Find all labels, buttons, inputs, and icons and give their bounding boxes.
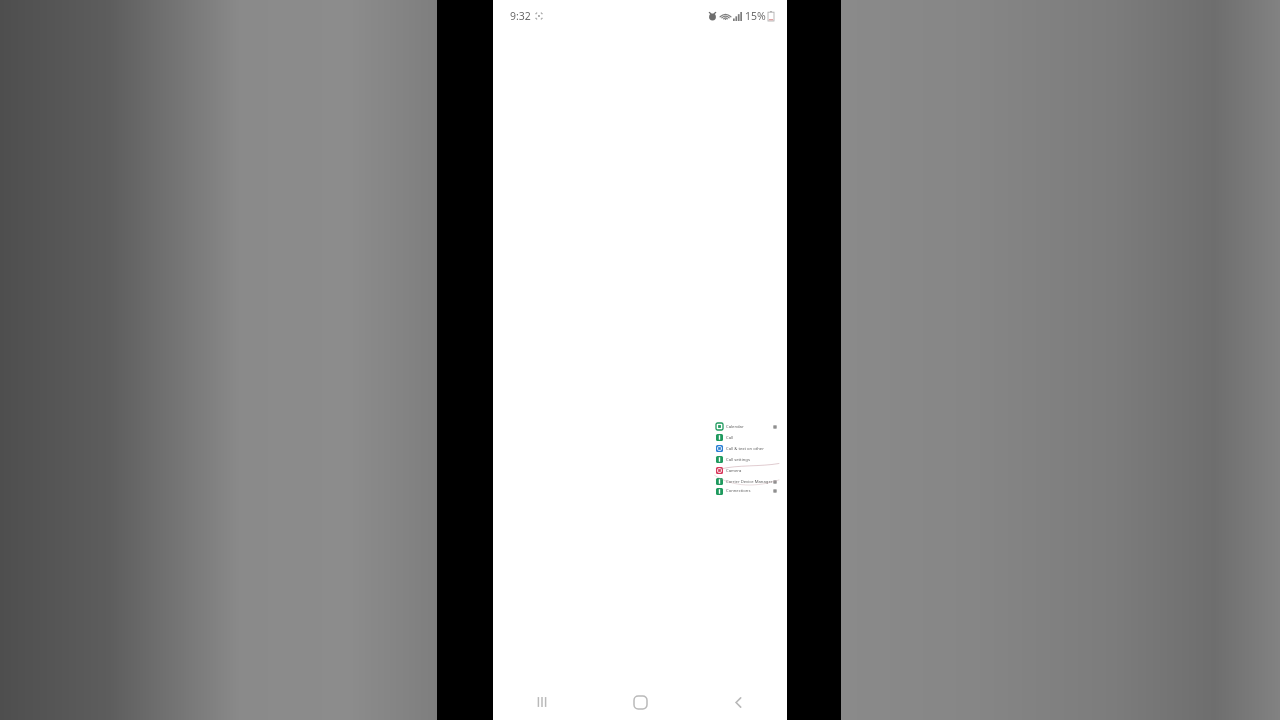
staticText: Call & text on other devices	[726, 446, 777, 452]
button[interactable]: Call	[713, 432, 780, 443]
staticText: Call settings	[726, 457, 777, 463]
staticText: Carrier Device Manager	[726, 479, 773, 485]
staticText: Connections	[726, 488, 773, 494]
button[interactable]: Back	[689, 684, 787, 720]
button[interactable]: Recent apps	[493, 684, 591, 720]
button[interactable]: Call & text on other devices	[713, 443, 780, 454]
staticText: Calendar	[726, 424, 773, 430]
button[interactable]: Connections	[713, 487, 780, 495]
button[interactable]: Carrier Device Manager	[713, 476, 780, 487]
staticText: Call	[726, 435, 777, 441]
button[interactable]: Camera	[713, 465, 780, 476]
staticText: 15%	[745, 9, 766, 23]
button[interactable]: Home	[591, 684, 689, 720]
button[interactable]: Calendar	[713, 421, 780, 432]
staticText: 9:32	[510, 9, 531, 23]
staticText: Camera	[726, 468, 777, 474]
button[interactable]: Call settings	[713, 454, 780, 465]
